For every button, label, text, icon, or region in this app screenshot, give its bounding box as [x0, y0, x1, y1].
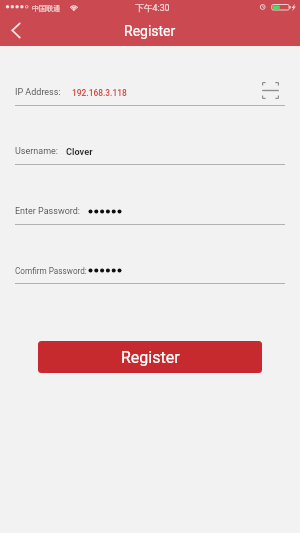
- button[interactable]: Comfirm Password:: [0, 224, 300, 283]
- staticText: Username:: [15, 146, 59, 157]
- staticText: 192.168.3.118: [72, 88, 127, 98]
- staticText: 中国联通: [32, 4, 61, 13]
- staticText: Enter Password:: [15, 206, 81, 217]
- button[interactable]: Back: [4, 17, 30, 43]
- button[interactable]: Username:: [0, 105, 300, 164]
- button[interactable]: IP Address:: [0, 46, 300, 105]
- staticText: Comfirm Password:: [15, 266, 87, 276]
- staticText: Clover: [66, 146, 93, 157]
- staticText: 下午4:30: [135, 3, 170, 14]
- staticText: Register: [121, 348, 180, 367]
- button[interactable]: Enter Password:: [0, 165, 300, 224]
- staticText: IP Address:: [15, 87, 61, 98]
- button[interactable]: Scan QR code: [261, 81, 280, 100]
- button[interactable]: Register: [38, 341, 262, 373]
- staticText: Register: [124, 23, 176, 39]
